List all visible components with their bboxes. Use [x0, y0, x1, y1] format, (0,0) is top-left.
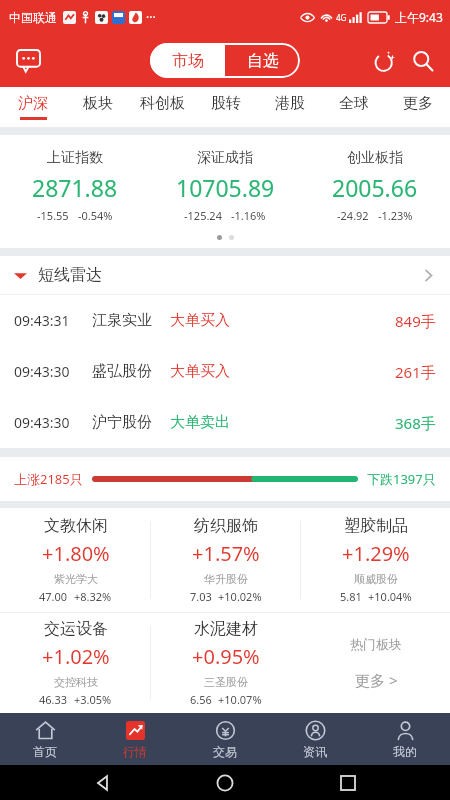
staticText: -125.24: [184, 208, 222, 223]
staticText: 短线雷达: [38, 265, 102, 285]
button[interactable]: Home: [205, 765, 245, 800]
staticText: +1.80%: [42, 540, 110, 567]
staticText: 紫光学大: [54, 572, 98, 586]
button[interactable]: Night mode: [368, 44, 402, 78]
staticText: 沪深: [18, 94, 48, 113]
button[interactable]: 股转: [194, 87, 258, 127]
button[interactable]: Back: [83, 765, 123, 800]
staticText: 10705.89: [176, 172, 275, 203]
button[interactable]: 水泥建材: [151, 613, 300, 713]
staticText: 47.00: [39, 589, 68, 604]
button[interactable]: 更多: [386, 87, 450, 127]
staticText: 上涨2185只: [14, 470, 83, 488]
staticText: 全球: [339, 94, 369, 113]
staticText: 交易: [213, 744, 237, 759]
button[interactable]: 科创板: [130, 87, 194, 127]
button[interactable]: 板块: [65, 87, 130, 127]
staticText: +10.07%: [218, 692, 262, 707]
staticText: ···: [146, 9, 156, 25]
staticText: -15.55: [37, 208, 69, 223]
staticText: 港股: [275, 94, 305, 113]
staticText: +8.32%: [74, 589, 112, 604]
staticText: 创业板指: [347, 149, 403, 167]
staticText: 下跌1397只: [367, 470, 436, 488]
staticText: 股转: [211, 94, 241, 113]
staticText: 首页: [33, 744, 57, 759]
button[interactable]: 沪深: [0, 87, 65, 127]
staticText: 2005.66: [332, 172, 418, 203]
button[interactable]: Search: [406, 44, 440, 78]
staticText: -0.54%: [78, 208, 113, 223]
staticText: 我的: [393, 744, 417, 759]
button[interactable]: 短线雷达: [0, 256, 450, 294]
staticText: 交控科技: [54, 675, 98, 689]
button[interactable]: 纺织服饰: [151, 508, 300, 612]
staticText: +1.02%: [42, 643, 110, 670]
staticText: 三圣股份: [204, 675, 248, 689]
staticText: 更多 >: [355, 670, 398, 690]
staticText: 深证成指: [197, 149, 253, 167]
staticText: 科创板: [140, 94, 185, 113]
staticText: +0.95%: [192, 643, 260, 670]
button[interactable]: 全球: [322, 87, 386, 127]
staticText: 自选: [247, 51, 279, 71]
button[interactable]: Recents: [328, 765, 368, 800]
staticText: 市场: [172, 51, 204, 71]
button[interactable]: 港股: [258, 87, 322, 127]
staticText: 文教休闲: [44, 516, 108, 536]
button[interactable]: 资讯: [270, 713, 360, 765]
staticText: 板块: [83, 94, 113, 113]
staticText: 水泥建材: [194, 619, 258, 639]
button[interactable]: 09:43:30: [0, 397, 450, 448]
staticText: -1.23%: [378, 208, 413, 223]
staticText: 4G: [336, 12, 347, 23]
staticText: +3.05%: [74, 692, 112, 707]
button[interactable]: 热门板块: [301, 613, 450, 713]
staticText: 261手: [395, 362, 436, 382]
staticText: 7.03: [190, 589, 212, 604]
button[interactable]: 我的: [360, 713, 450, 765]
staticText: 849手: [395, 311, 436, 331]
staticText: -24.92: [337, 208, 369, 223]
button[interactable]: 创业板指: [300, 149, 450, 223]
button[interactable]: 市场: [150, 43, 225, 78]
button[interactable]: 文教休闲: [0, 508, 150, 612]
staticText: 江泉实业: [92, 311, 152, 330]
button[interactable]: 行情: [90, 713, 180, 765]
button[interactable]: 09:43:30: [0, 346, 450, 397]
button[interactable]: 09:43:31: [0, 295, 450, 346]
button[interactable]: 交易: [180, 713, 270, 765]
staticText: 盛弘股份: [92, 362, 152, 381]
staticText: 46.33: [39, 692, 68, 707]
staticText: 资讯: [303, 744, 327, 759]
staticText: 塑胶制品: [344, 516, 408, 536]
staticText: 纺织服饰: [194, 516, 258, 536]
button[interactable]: 首页: [0, 713, 90, 765]
staticText: 09:43:30: [14, 413, 70, 432]
staticText: 行情: [123, 744, 147, 759]
staticText: 中国联通: [9, 10, 57, 25]
staticText: 更多: [403, 94, 433, 113]
button[interactable]: 塑胶制品: [301, 508, 450, 612]
staticText: +1.57%: [192, 540, 260, 567]
staticText: 大单买入: [170, 311, 230, 330]
staticText: 交运设备: [44, 619, 108, 639]
button[interactable]: 自选: [225, 43, 300, 78]
button[interactable]: Messages: [10, 43, 46, 79]
staticText: 2871.88: [32, 172, 118, 203]
button[interactable]: 交运设备: [0, 613, 150, 713]
staticText: 09:43:30: [14, 362, 70, 381]
staticText: 上证指数: [47, 149, 103, 167]
staticText: +1.29%: [342, 540, 410, 567]
button[interactable]: 上证指数: [0, 149, 150, 223]
staticText: 5.81: [340, 589, 362, 604]
staticText: 沪宁股份: [92, 413, 152, 432]
button[interactable]: 深证成指: [150, 149, 300, 223]
staticText: 6.56: [190, 692, 212, 707]
staticText: +10.02%: [218, 589, 262, 604]
staticText: 顺威股份: [354, 572, 398, 586]
staticText: +10.04%: [368, 589, 412, 604]
staticText: 368手: [395, 413, 436, 433]
staticText: 大单卖出: [170, 413, 230, 432]
staticText: 华升股份: [204, 572, 248, 586]
